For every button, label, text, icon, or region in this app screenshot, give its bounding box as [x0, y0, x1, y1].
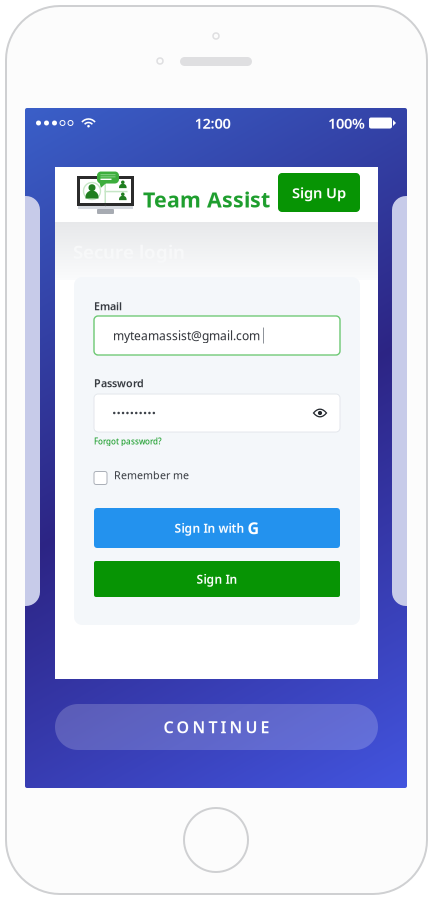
- staticText: myteamassist@gmail.com: [113, 327, 260, 343]
- staticText: Sign In: [196, 571, 237, 587]
- staticText: Forgot password?: [94, 436, 162, 447]
- staticText: 100%: [328, 113, 365, 133]
- staticText: Sign Up: [292, 183, 346, 202]
- staticText: Secure login: [73, 239, 185, 264]
- button[interactable]: Sign In with: [94, 508, 340, 548]
- button[interactable]: Sign In: [94, 561, 340, 597]
- staticText: G: [247, 517, 259, 539]
- staticText: Sign In with: [174, 520, 244, 536]
- staticText: C O N T I N U E: [163, 716, 269, 738]
- staticText: Email: [94, 299, 122, 313]
- button[interactable]: Forgot password?: [94, 436, 162, 447]
- staticText: Password: [94, 376, 144, 390]
- staticText: 12:00: [194, 113, 230, 133]
- button[interactable]: C O N T I N U E: [55, 704, 378, 750]
- staticText: Team Assist: [143, 185, 270, 213]
- button[interactable]: Sign Up: [278, 173, 360, 212]
- button[interactable]: Remember me: [94, 467, 189, 483]
- staticText: Remember me: [114, 468, 189, 482]
